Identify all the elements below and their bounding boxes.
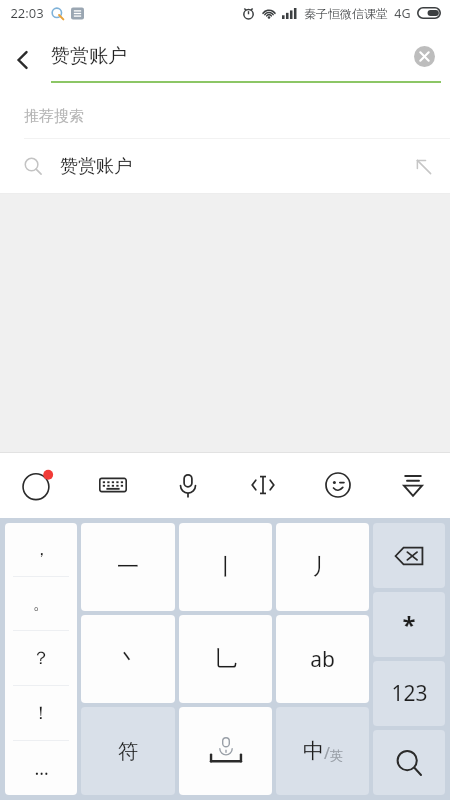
button[interactable]: 中 xyxy=(276,707,369,795)
button[interactable]: ab xyxy=(276,615,369,703)
button[interactable]: Input method xyxy=(0,452,75,518)
staticText: 。 xyxy=(33,593,50,614)
staticText: 中 xyxy=(303,738,324,764)
button[interactable]: 一 xyxy=(81,523,175,611)
button[interactable]: ， xyxy=(5,523,77,576)
staticText: 丿 xyxy=(312,553,334,581)
button[interactable]: 符 xyxy=(81,707,175,795)
staticText: ！ xyxy=(32,702,50,725)
button[interactable]: … xyxy=(5,741,77,795)
button[interactable]: 丨 xyxy=(179,523,272,611)
staticText: 一 xyxy=(117,553,139,581)
button[interactable]: 赞赏账户 xyxy=(0,139,450,193)
staticText: 推荐搜索 xyxy=(24,107,84,126)
staticText: 英 xyxy=(330,747,343,763)
button[interactable]: Space xyxy=(179,707,272,795)
staticText: 符 xyxy=(118,739,138,764)
staticText: … xyxy=(34,756,49,781)
button[interactable]: Move cursor xyxy=(225,452,300,518)
button[interactable]: ！ xyxy=(5,686,77,740)
button[interactable]: Backspace xyxy=(373,523,445,588)
button[interactable]: Emoji xyxy=(300,452,375,518)
staticText: 丨 xyxy=(215,553,237,581)
staticText: 22:03 xyxy=(10,4,44,22)
staticText: ab xyxy=(310,645,335,674)
staticText: ， xyxy=(33,539,50,560)
staticText: 乚 xyxy=(215,645,237,673)
staticText: 丶 xyxy=(117,645,139,673)
button[interactable]: Back xyxy=(0,32,46,88)
button[interactable]: Clear xyxy=(407,39,441,73)
button[interactable]: Keyboard xyxy=(75,452,150,518)
staticText: 赞赏账户 xyxy=(51,44,127,68)
staticText: 赞赏账户 xyxy=(60,155,132,178)
button[interactable]: 。 xyxy=(5,577,77,630)
button[interactable]: 乚 xyxy=(179,615,272,703)
button[interactable]: Star xyxy=(373,592,445,657)
staticText: 123 xyxy=(391,679,428,708)
button[interactable]: ？ xyxy=(5,631,77,685)
staticText: 秦子恒微信课堂 xyxy=(304,6,388,21)
button[interactable]: Search xyxy=(373,730,445,795)
button[interactable]: Numbers xyxy=(373,661,445,726)
button[interactable]: Hide keyboard xyxy=(375,452,450,518)
button[interactable]: Voice input xyxy=(150,452,225,518)
staticText: * xyxy=(402,608,416,641)
button[interactable]: 丿 xyxy=(276,523,369,611)
staticText: / xyxy=(324,742,330,764)
button[interactable]: 丶 xyxy=(81,615,175,703)
staticText: ？ xyxy=(32,647,50,670)
staticText: 4G xyxy=(394,5,411,22)
